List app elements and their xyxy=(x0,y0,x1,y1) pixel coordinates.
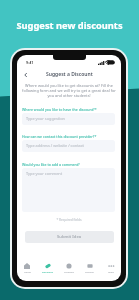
button[interactable]: Discounts xyxy=(37,263,58,276)
button[interactable]: Type address / website / contact xyxy=(22,140,115,152)
staticText: Would you like to add a comment? xyxy=(22,162,80,167)
staticText: Type your comment xyxy=(26,171,63,176)
staticText: How can we contact this discount provide… xyxy=(22,134,97,139)
staticText: Home xyxy=(24,270,31,273)
staticText: Submit Idea xyxy=(57,234,82,240)
button[interactable]: Home xyxy=(17,263,37,276)
staticText: Coupons xyxy=(64,270,74,273)
staticText: Wishlist xyxy=(85,270,94,273)
button[interactable]: Submit Idea xyxy=(25,231,114,243)
staticText: More xyxy=(108,270,114,273)
staticText: Suggest new discounts xyxy=(0,19,139,32)
staticText: Discounts xyxy=(42,270,54,273)
staticText: Type address / website / contact xyxy=(26,143,84,148)
staticText: Where would you like to have the discoun… xyxy=(22,107,97,112)
staticText: Type your suggestion xyxy=(26,116,65,121)
button[interactable]: Wishlist xyxy=(79,263,100,276)
staticText: 9:41 xyxy=(26,60,34,65)
staticText: Where would you like to get discounts at… xyxy=(17,83,121,98)
button[interactable]: More xyxy=(100,263,121,276)
staticText: Suggest a Discount xyxy=(46,71,93,78)
button[interactable]: Type your suggestion xyxy=(22,113,115,125)
button[interactable]: Coupons xyxy=(58,263,79,276)
button[interactable]: Back xyxy=(20,69,31,80)
button[interactable]: Type your comment xyxy=(22,168,115,212)
staticText: * Required fields xyxy=(17,218,121,222)
